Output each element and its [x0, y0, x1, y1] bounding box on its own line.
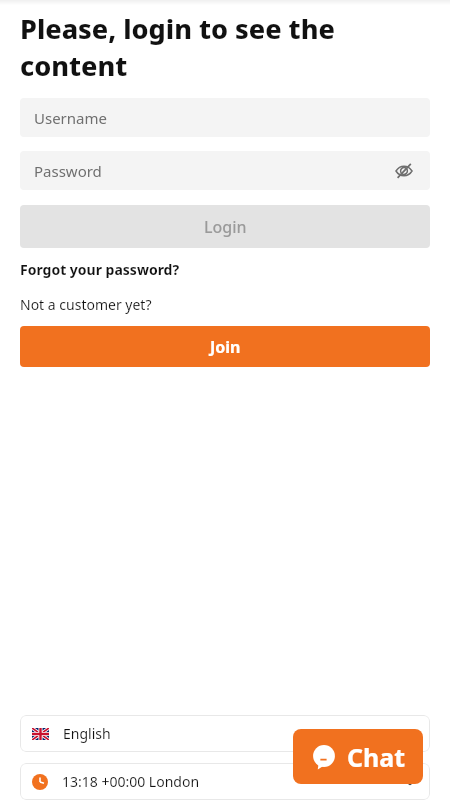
staticText: Not a customer yet? — [20, 295, 152, 314]
staticText: 13:18 +00:00 London — [62, 772, 200, 791]
button[interactable]: Login — [20, 205, 430, 248]
button[interactable]: Show password — [392, 159, 416, 183]
button[interactable]: Chat — [293, 729, 423, 784]
staticText: Password — [34, 161, 102, 181]
staticText: Please, login to see the content — [20, 10, 335, 84]
staticText: Login — [204, 216, 247, 238]
button[interactable]: 13:18 +00:00 London — [20, 763, 430, 800]
staticText: English — [63, 724, 111, 743]
staticText: Username — [34, 108, 107, 128]
button[interactable]: Password — [20, 151, 430, 190]
button[interactable]: Join — [20, 326, 430, 367]
staticText: Forgot your password? — [20, 260, 180, 279]
staticText: Chat — [347, 740, 406, 774]
button[interactable]: English — [20, 715, 430, 752]
button[interactable]: Forgot your password? — [20, 260, 180, 279]
button[interactable]: Username — [20, 98, 430, 137]
staticText: Join — [210, 336, 241, 358]
